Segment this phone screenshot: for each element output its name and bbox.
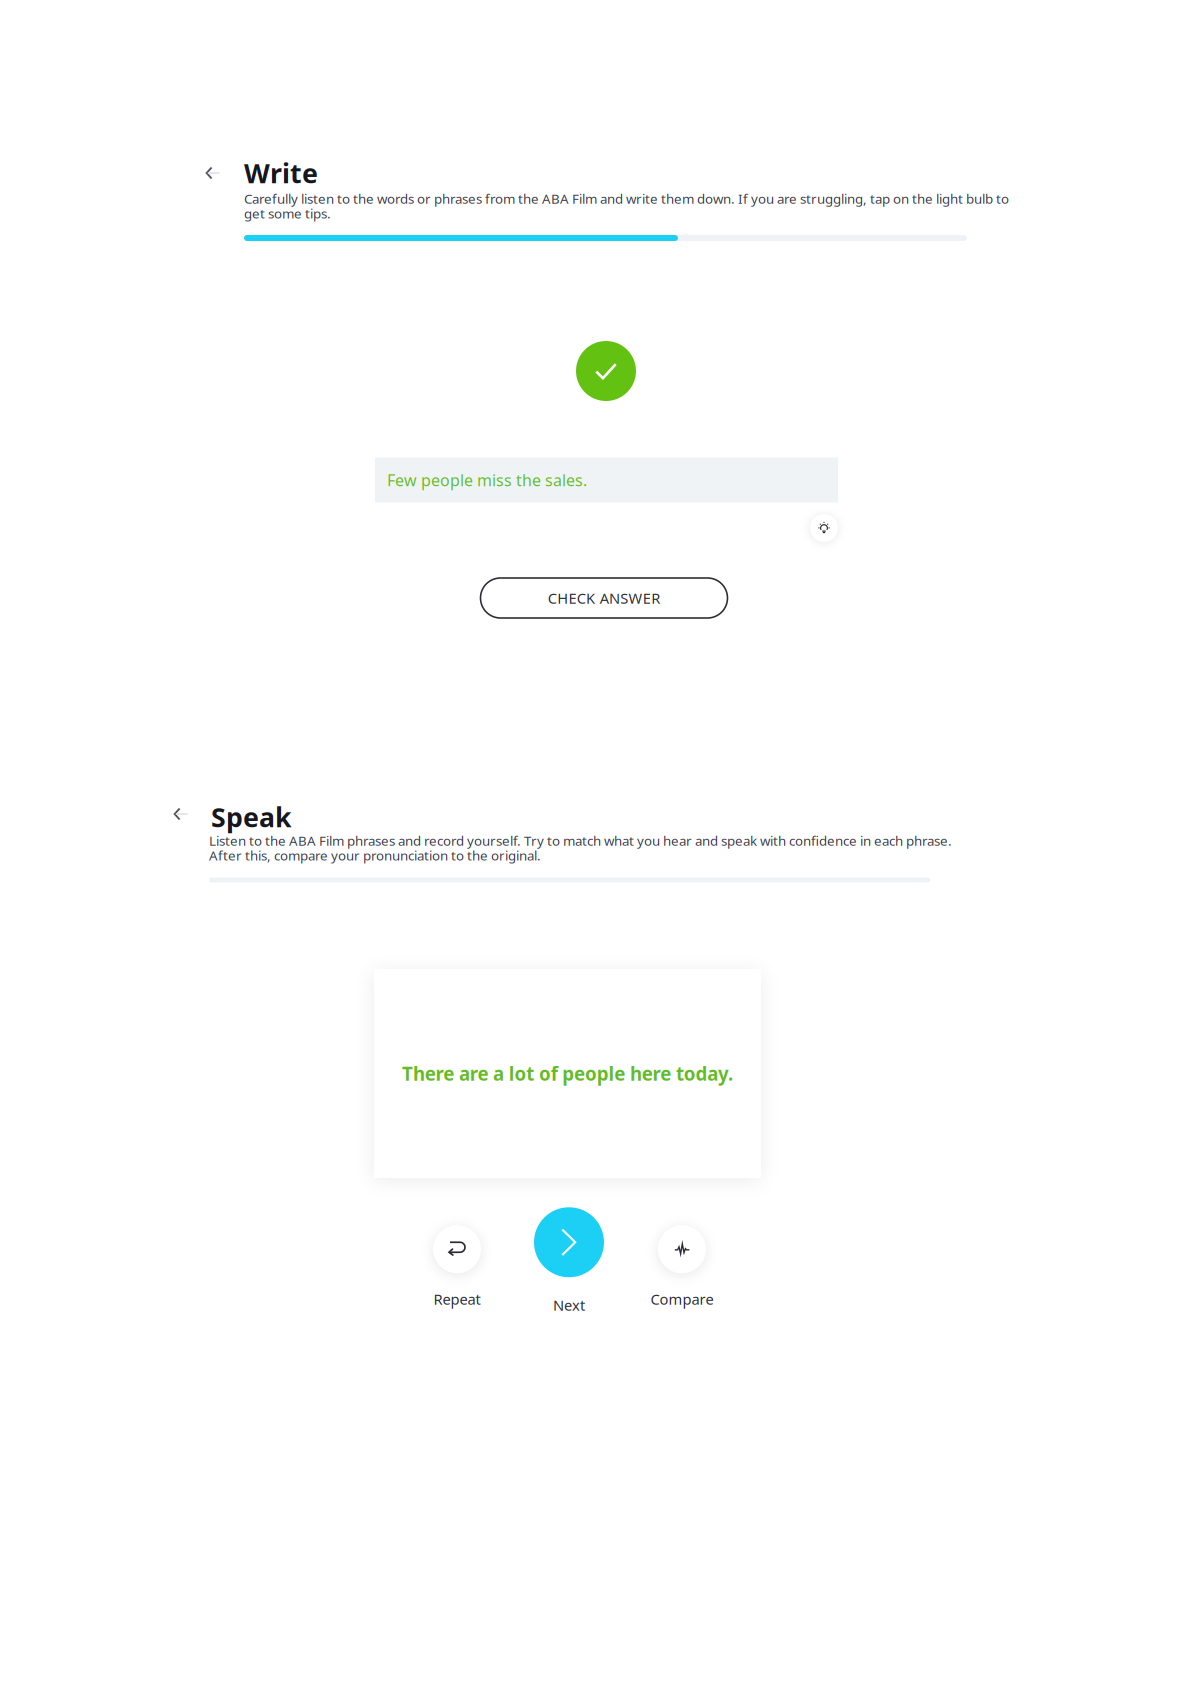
button[interactable]: Back (162, 797, 202, 831)
button[interactable]: Compare (650, 1225, 713, 1309)
button[interactable]: Back (194, 156, 234, 190)
button[interactable]: Repeat (433, 1225, 481, 1309)
staticText: Next (553, 1295, 585, 1315)
staticText: There are a lot of people here today. (402, 1061, 733, 1086)
staticText: Repeat (433, 1289, 480, 1309)
staticText: Listen to the ABA Film phrases and recor… (209, 832, 952, 864)
staticText: Write (244, 155, 318, 191)
button[interactable]: CHECK ANSWER (480, 578, 727, 618)
staticText: Few people miss the sales. (387, 469, 587, 491)
staticText: Carefully listen to the words or phrases… (244, 190, 1009, 222)
staticText: CHECK ANSWER (548, 588, 660, 608)
button[interactable]: Next (534, 1207, 604, 1315)
staticText: Compare (650, 1289, 713, 1309)
staticText: Speak (211, 799, 292, 835)
button[interactable]: Hint (809, 513, 839, 543)
